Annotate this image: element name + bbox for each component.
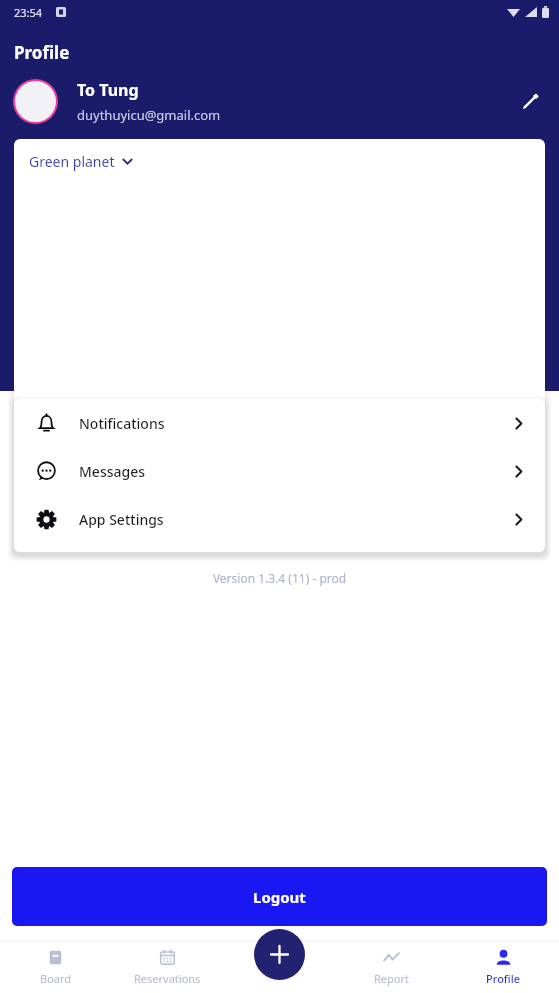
- staticText: App Settings: [79, 510, 512, 529]
- staticText: 23:54: [14, 5, 43, 20]
- staticText: Version 1.3.4 (11) - prod: [0, 570, 559, 586]
- staticText: Board: [40, 971, 72, 986]
- button[interactable]: Report: [335, 941, 447, 993]
- button[interactable]: Notifications: [14, 399, 545, 447]
- staticText: Green planet: [29, 152, 115, 171]
- staticText: Notifications: [79, 414, 512, 433]
- staticText: Profile: [486, 971, 521, 986]
- staticText: To Tung: [77, 79, 139, 101]
- button[interactable]: Profile picture: [15, 81, 56, 122]
- staticText: Reservations: [134, 971, 201, 986]
- staticText: duythuyicu@gmail.com: [77, 106, 221, 124]
- button[interactable]: Logout: [12, 867, 547, 926]
- staticText: Profile: [14, 41, 70, 64]
- button[interactable]: App Settings: [14, 495, 545, 543]
- staticText: Logout: [253, 887, 306, 907]
- button[interactable]: Board: [0, 941, 111, 993]
- button[interactable]: Reservations: [111, 941, 223, 993]
- button[interactable]: Add: [254, 929, 305, 980]
- staticText: Report: [374, 971, 409, 986]
- button[interactable]: Edit profile: [507, 80, 551, 124]
- button[interactable]: Profile: [447, 941, 559, 993]
- button[interactable]: Green planet: [26, 149, 136, 174]
- staticText: Messages: [79, 462, 512, 481]
- button[interactable]: Messages: [14, 447, 545, 495]
